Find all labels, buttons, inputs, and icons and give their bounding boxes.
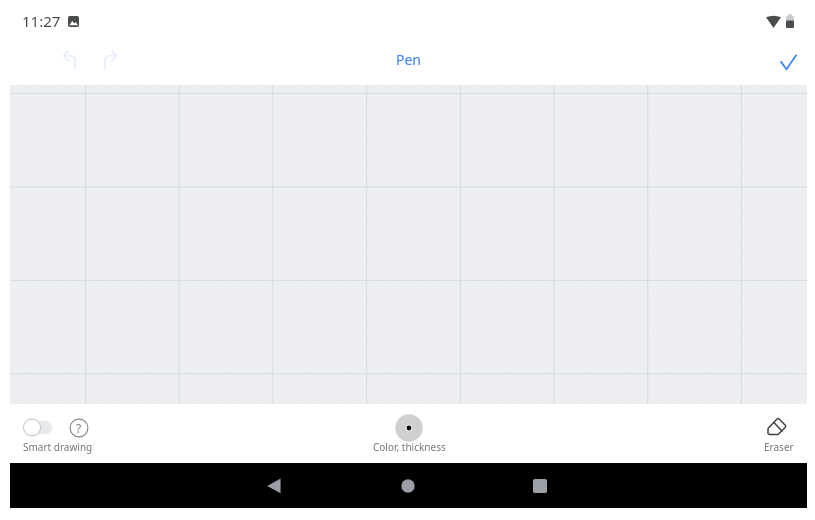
button[interactable]: Done bbox=[768, 42, 808, 82]
staticText: 11:27 bbox=[22, 11, 61, 31]
button[interactable]: Eraser bbox=[748, 405, 808, 457]
button[interactable]: Back bbox=[252, 463, 296, 508]
button[interactable]: Help bbox=[68, 417, 90, 439]
staticText: ? bbox=[76, 420, 82, 436]
button[interactable]: Recent apps bbox=[518, 463, 562, 508]
button[interactable]: Color, thickness bbox=[364, 405, 454, 457]
button[interactable]: Undo bbox=[51, 42, 87, 78]
staticText: Eraser bbox=[764, 440, 794, 454]
button[interactable]: Home bbox=[386, 463, 430, 508]
staticText: Color, thickness bbox=[373, 440, 446, 454]
staticText: Smart drawing bbox=[23, 440, 93, 454]
button[interactable]: Pen bbox=[396, 50, 422, 69]
button[interactable]: Redo bbox=[92, 42, 128, 78]
staticText: Pen bbox=[396, 50, 422, 69]
button[interactable]: Smart drawing bbox=[18, 412, 90, 458]
